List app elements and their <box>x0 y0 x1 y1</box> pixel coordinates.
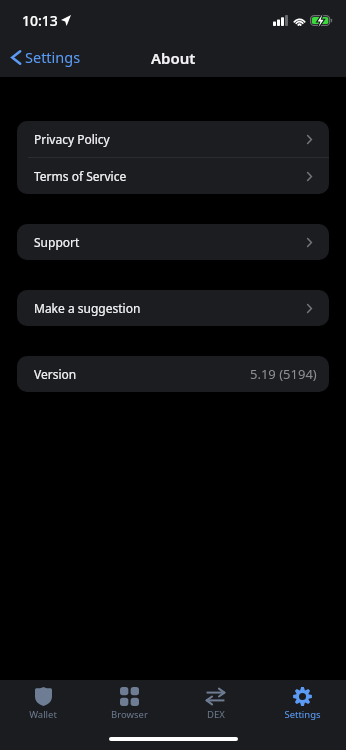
staticText: 10:13 <box>22 11 58 30</box>
staticText: DEX <box>207 708 225 721</box>
button[interactable]: Settings <box>259 686 346 728</box>
button[interactable]: DEX <box>172 686 259 728</box>
staticText: Browser <box>111 708 148 721</box>
staticText: Privacy Policy <box>34 131 110 147</box>
button[interactable]: Settings <box>0 43 87 71</box>
button[interactable]: Make a suggestion <box>17 290 329 326</box>
button[interactable]: Version <box>17 356 329 392</box>
staticText: Settings <box>284 708 321 721</box>
staticText: Support <box>34 234 80 250</box>
staticText: Version <box>34 366 77 382</box>
staticText: 5.19 (5194) <box>250 365 317 383</box>
staticText: Terms of Service <box>34 168 127 184</box>
staticText: About <box>151 48 196 68</box>
button[interactable]: Terms of Service <box>17 158 329 194</box>
button[interactable]: Browser <box>86 686 172 728</box>
button[interactable]: Privacy Policy <box>17 121 329 157</box>
staticText: Settings <box>25 47 81 67</box>
button[interactable]: Wallet <box>0 686 86 728</box>
staticText: Make a suggestion <box>34 300 141 316</box>
staticText: Wallet <box>29 708 57 721</box>
button[interactable]: Support <box>17 224 329 260</box>
